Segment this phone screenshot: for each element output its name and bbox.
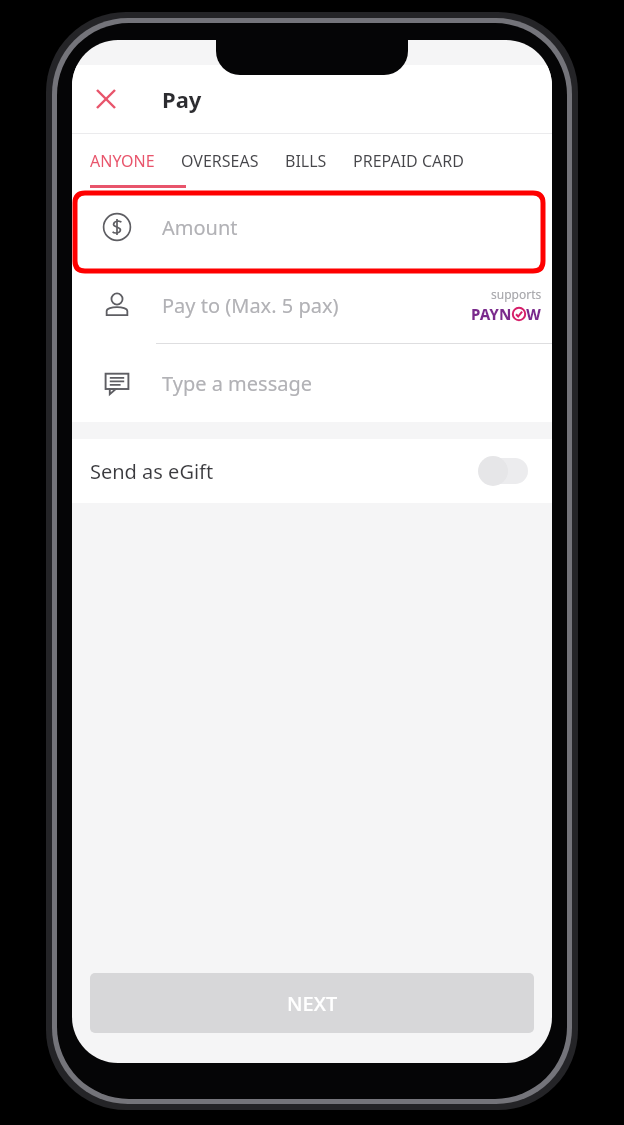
staticText: Pay: [162, 84, 202, 114]
staticText: Amount: [162, 214, 238, 241]
button[interactable]: ANYONE: [90, 134, 155, 188]
staticText: BILLS: [285, 150, 327, 172]
button[interactable]: OVERSEAS: [181, 134, 259, 188]
button[interactable]: Amount: [72, 188, 552, 266]
staticText: Pay to (Max. 5 pax): [162, 292, 339, 319]
button[interactable]: NEXT: [90, 973, 534, 1033]
button[interactable]: Send as eGift: [72, 439, 552, 503]
button[interactable]: Send as eGift toggle: [478, 456, 530, 486]
button[interactable]: Pay to (Max. 5 pax): [72, 266, 552, 344]
button[interactable]: Type a message: [72, 344, 552, 422]
button[interactable]: PREPAID CARD: [353, 134, 464, 188]
staticText: PREPAID CARD: [353, 150, 464, 172]
staticText: NEXT: [287, 990, 338, 1017]
button[interactable]: Close: [78, 71, 134, 127]
staticText: Type a message: [162, 370, 313, 397]
staticText: OVERSEAS: [181, 150, 259, 172]
staticText: Send as eGift: [90, 458, 214, 485]
staticText: PAYN: [471, 304, 512, 324]
button[interactable]: BILLS: [285, 134, 327, 188]
staticText: supports: [491, 286, 542, 302]
staticText: ANYONE: [90, 150, 155, 172]
staticText: W: [526, 304, 542, 324]
